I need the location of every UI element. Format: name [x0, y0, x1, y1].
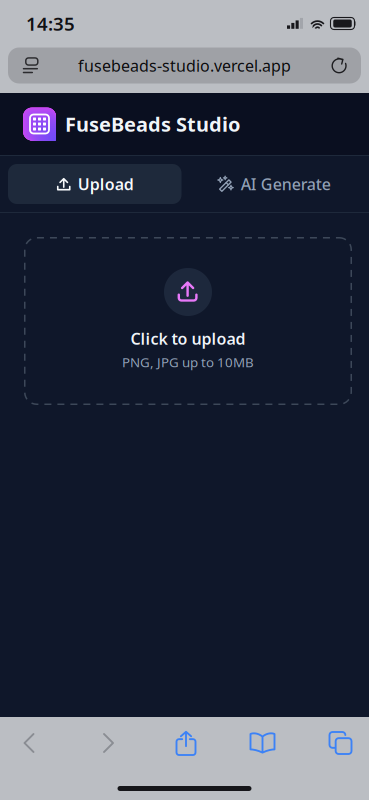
staticText: fusebeads-studio.vercel.app [78, 55, 291, 76]
staticText: PNG, JPG up to 10MB [122, 353, 254, 371]
button[interactable]: Tabs [301, 717, 369, 769]
button[interactable]: Forward [69, 717, 148, 769]
button[interactable]: Back [0, 717, 69, 769]
staticText: Upload [78, 173, 134, 195]
staticText: FuseBeads Studio [65, 111, 241, 137]
staticText: Click to upload [130, 328, 245, 349]
button[interactable]: Upload [8, 164, 181, 204]
button[interactable]: AI Generate [187, 164, 361, 204]
button[interactable]: Click to upload [24, 237, 352, 405]
staticText: AI Generate [241, 173, 331, 195]
button[interactable]: Page settings [8, 47, 52, 83]
button[interactable]: Bookmarks [224, 717, 301, 769]
button[interactable]: Reload [317, 47, 361, 83]
button[interactable]: Share [148, 717, 224, 769]
staticText: 14:35 [26, 11, 75, 36]
